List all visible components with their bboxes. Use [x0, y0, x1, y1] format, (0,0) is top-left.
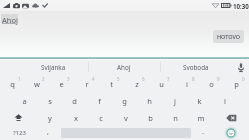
button[interactable]: s: [37, 92, 62, 109]
staticText: g: [122, 96, 127, 106]
button[interactable]: Ahoj: [88, 59, 160, 75]
staticText: c: [99, 113, 103, 123]
staticText: 8: [192, 76, 195, 82]
button[interactable]: m: [188, 109, 213, 126]
button[interactable]: u: [149, 75, 174, 92]
button[interactable]: HOTOVO: [213, 30, 244, 43]
staticText: f: [98, 96, 101, 106]
button[interactable]: Svijanka: [18, 59, 88, 75]
button[interactable]: i: [174, 75, 199, 92]
staticText: Svoboda: [183, 63, 209, 72]
staticText: x: [74, 113, 78, 123]
button[interactable]: o: [199, 75, 224, 92]
staticText: o: [209, 79, 214, 89]
button[interactable]: Emoji: [212, 126, 249, 140]
button[interactable]: Shift: [0, 109, 37, 126]
staticText: e: [59, 79, 64, 89]
staticText: 2: [42, 76, 45, 82]
button[interactable]: Voice input: [232, 59, 249, 75]
button[interactable]: t: [99, 75, 124, 92]
staticText: HOTOVO: [217, 33, 241, 40]
button[interactable]: r: [74, 75, 99, 92]
staticText: w: [34, 79, 40, 89]
button[interactable]: g: [112, 92, 137, 109]
staticText: 3: [67, 76, 70, 82]
button[interactable]: [58, 126, 194, 140]
staticText: d: [72, 96, 77, 106]
staticText: 7: [167, 76, 170, 82]
staticText: r: [85, 79, 89, 89]
staticText: m: [197, 113, 205, 123]
staticText: Ahoj: [2, 15, 18, 25]
button[interactable]: e: [49, 75, 74, 92]
button[interactable]: l: [212, 92, 237, 109]
staticText: 9: [217, 76, 220, 82]
button[interactable]: j: [162, 92, 187, 109]
staticText: y: [48, 113, 52, 123]
staticText: k: [197, 96, 202, 106]
staticText: 1: [18, 76, 21, 82]
staticText: s: [48, 96, 52, 106]
staticText: n: [173, 113, 178, 123]
staticText: l: [224, 96, 226, 106]
staticText: 6: [142, 76, 145, 82]
button[interactable]: w: [24, 75, 49, 92]
button[interactable]: p: [224, 75, 249, 92]
staticText: u: [159, 79, 164, 89]
staticText: 0: [242, 76, 245, 82]
staticText: p: [234, 79, 239, 89]
staticText: b: [148, 113, 153, 123]
button[interactable]: y: [37, 109, 63, 126]
staticText: i: [186, 79, 188, 89]
button[interactable]: Backspace: [213, 109, 249, 126]
button[interactable]: Svoboda: [160, 59, 232, 75]
button[interactable]: ,: [38, 126, 58, 140]
button[interactable]: q: [0, 75, 24, 92]
staticText: 4: [92, 76, 95, 82]
staticText: 10:30: [233, 2, 249, 10]
staticText: Svijanka: [41, 63, 66, 72]
staticText: v: [124, 113, 128, 123]
staticText: 5: [117, 76, 120, 82]
staticText: a: [22, 96, 27, 106]
button[interactable]: a: [12, 92, 37, 109]
staticText: Ahoj: [117, 63, 131, 72]
button[interactable]: c: [88, 109, 113, 126]
button[interactable]: n: [163, 109, 188, 126]
button[interactable]: f: [87, 92, 112, 109]
staticText: q: [10, 79, 15, 89]
button[interactable]: .: [194, 126, 212, 140]
button[interactable]: b: [138, 109, 163, 126]
staticText: j: [174, 96, 176, 106]
button[interactable]: d: [62, 92, 87, 109]
staticText: ?123: [13, 129, 26, 137]
staticText: .: [202, 127, 204, 137]
staticText: t: [110, 79, 113, 89]
button[interactable]: ?123: [0, 126, 38, 140]
staticText: ,: [47, 127, 49, 137]
button[interactable]: z: [124, 75, 149, 92]
button[interactable]: k: [187, 92, 212, 109]
staticText: z: [135, 79, 139, 89]
button[interactable]: x: [63, 109, 88, 126]
button[interactable]: v: [113, 109, 138, 126]
button[interactable]: h: [137, 92, 162, 109]
staticText: h: [147, 96, 152, 106]
